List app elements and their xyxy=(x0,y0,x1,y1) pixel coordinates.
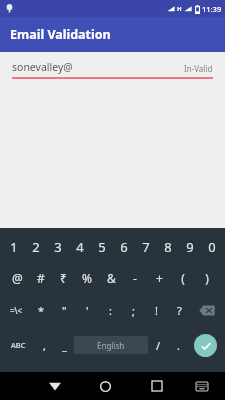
button[interactable]: ' xyxy=(76,294,99,327)
button[interactable]: # xyxy=(29,262,52,294)
button[interactable]: ) xyxy=(195,262,219,294)
staticText: ( xyxy=(181,270,185,286)
button[interactable]: / xyxy=(148,327,168,363)
button[interactable]: ; xyxy=(122,294,145,327)
button[interactable]: . xyxy=(168,327,188,363)
staticText: ' xyxy=(86,303,89,318)
button[interactable]: , xyxy=(34,327,54,363)
button[interactable]: @ xyxy=(6,262,29,294)
button[interactable]: & xyxy=(99,262,123,294)
staticText: - xyxy=(133,270,137,286)
staticText: & xyxy=(107,270,116,286)
button[interactable]: Done xyxy=(194,334,217,357)
button[interactable]: - xyxy=(123,262,147,294)
button[interactable]: 8 xyxy=(157,232,179,262)
staticText: " xyxy=(62,303,67,318)
staticText: 1 xyxy=(10,238,18,256)
staticText: @ xyxy=(12,270,23,286)
button[interactable]: 1 xyxy=(2,232,25,262)
staticText: # xyxy=(37,270,45,286)
staticText: H xyxy=(177,5,182,13)
staticText: 6 xyxy=(120,238,128,256)
staticText: ? xyxy=(177,303,182,318)
button[interactable]: 5 xyxy=(91,232,113,262)
staticText: 0 xyxy=(208,238,216,256)
staticText: . xyxy=(177,338,180,353)
button[interactable]: 6 xyxy=(113,232,135,262)
staticText: : xyxy=(109,303,112,318)
button[interactable]: Switch keyboard xyxy=(185,372,218,400)
button[interactable]: _ xyxy=(54,327,74,363)
button[interactable]: English xyxy=(74,336,148,354)
staticText: ) xyxy=(205,270,209,286)
button[interactable]: Backspace xyxy=(191,294,223,327)
button[interactable]: 0 xyxy=(201,232,223,262)
button[interactable]: 3 xyxy=(47,232,69,262)
button[interactable]: 2 xyxy=(25,232,47,262)
button[interactable]: 4 xyxy=(69,232,91,262)
staticText: 9 xyxy=(186,238,194,256)
button[interactable]: : xyxy=(99,294,122,327)
staticText: / xyxy=(156,338,161,353)
button[interactable]: + xyxy=(147,262,171,294)
button[interactable]: ₹ xyxy=(52,262,75,294)
staticText: 3 xyxy=(54,238,62,256)
staticText: =\< xyxy=(10,305,23,316)
button[interactable]: Recent apps xyxy=(140,372,173,400)
button[interactable]: ( xyxy=(171,262,195,294)
staticText: 8 xyxy=(164,238,172,256)
staticText: Email Validation xyxy=(10,26,111,43)
staticText: 11:39 xyxy=(202,4,222,14)
button[interactable]: % xyxy=(75,262,99,294)
staticText: 5 xyxy=(98,238,106,256)
staticText: ₹ xyxy=(60,270,67,286)
button[interactable]: " xyxy=(53,294,76,327)
button[interactable]: * xyxy=(30,294,53,327)
staticText: * xyxy=(38,303,45,318)
staticText: 2 xyxy=(32,238,40,256)
button[interactable]: ABC xyxy=(2,327,34,363)
staticText: ; xyxy=(132,303,135,318)
staticText: + xyxy=(156,270,163,286)
button[interactable]: =\< xyxy=(2,294,30,327)
staticText: , xyxy=(43,338,46,353)
staticText: English xyxy=(97,340,125,351)
button[interactable]: Home xyxy=(89,372,122,400)
staticText: In-Valid xyxy=(184,63,213,74)
staticText: 7 xyxy=(142,238,150,256)
button[interactable]: 7 xyxy=(135,232,157,262)
staticText: _ xyxy=(62,338,67,353)
staticText: sonevalley@ xyxy=(12,60,73,74)
staticText: 4 xyxy=(76,238,84,256)
button[interactable]: sonevalley@ xyxy=(12,60,213,79)
staticText: % xyxy=(82,270,92,286)
button[interactable]: 9 xyxy=(179,232,201,262)
staticText: ABC xyxy=(11,340,26,350)
button[interactable]: Back xyxy=(38,372,71,400)
button[interactable]: ! xyxy=(145,294,168,327)
staticText: ! xyxy=(155,303,158,318)
button[interactable]: ? xyxy=(168,294,191,327)
